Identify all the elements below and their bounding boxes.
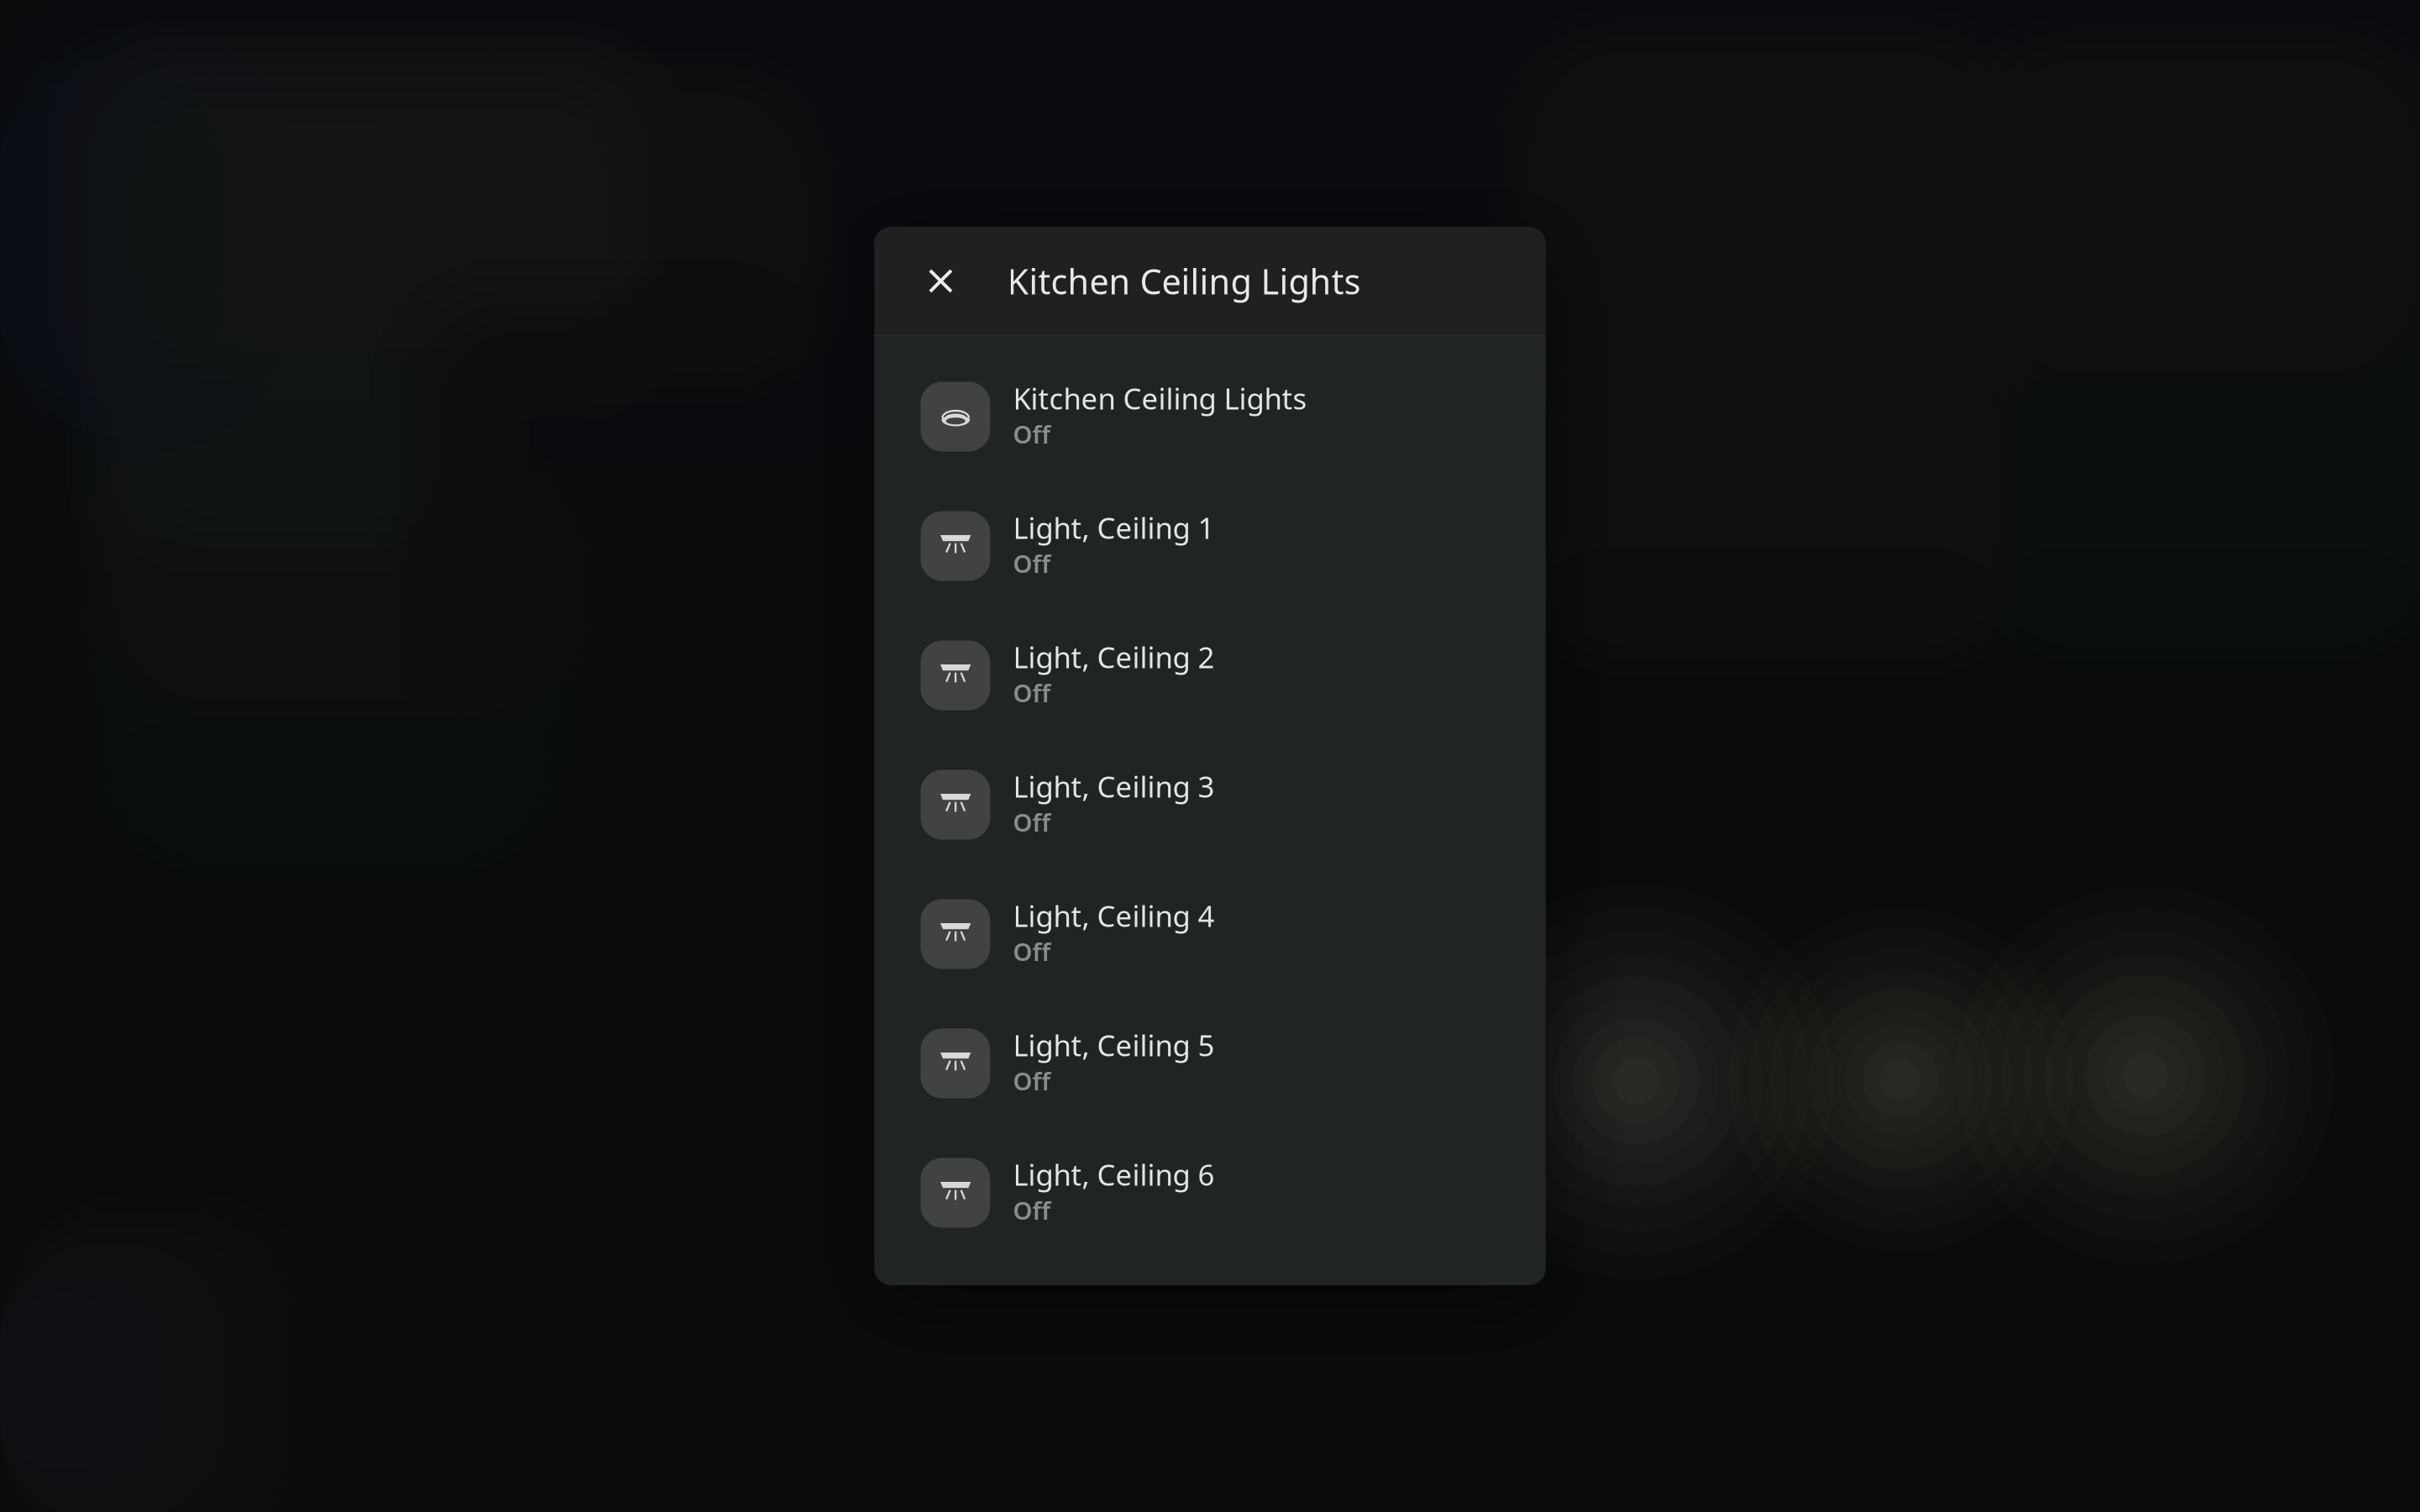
button[interactable]: Light, Ceiling 3 <box>874 740 1546 869</box>
button[interactable]: Light, Ceiling 1 <box>874 481 1546 611</box>
staticText: Off <box>1013 676 1051 709</box>
button[interactable]: Light, Ceiling 6 <box>874 1128 1546 1257</box>
button[interactable]: Light, Ceiling 5 <box>874 999 1546 1128</box>
button[interactable]: Kitchen Ceiling Lights <box>874 352 1546 481</box>
button[interactable]: Close <box>916 257 965 305</box>
button[interactable]: Light, Ceiling 2 <box>874 611 1546 740</box>
button[interactable]: Light, Ceiling 4 <box>874 869 1546 999</box>
staticText: Off <box>1013 1194 1051 1226</box>
staticText: Light, Ceiling 6 <box>1013 1155 1215 1194</box>
staticText: Off <box>1013 935 1051 968</box>
staticText: Kitchen Ceiling Lights <box>1007 258 1361 304</box>
staticText: Light, Ceiling 2 <box>1013 638 1215 676</box>
staticText: Off <box>1013 547 1051 580</box>
staticText: Light, Ceiling 3 <box>1013 767 1215 806</box>
staticText: Off <box>1013 806 1051 838</box>
staticText: Light, Ceiling 4 <box>1013 896 1215 935</box>
staticText: Kitchen Ceiling Lights <box>1013 379 1307 417</box>
staticText: Off <box>1013 1064 1051 1097</box>
staticText: Light, Ceiling 1 <box>1013 508 1215 547</box>
staticText: Off <box>1013 417 1051 450</box>
staticText: Light, Ceiling 5 <box>1013 1026 1215 1064</box>
